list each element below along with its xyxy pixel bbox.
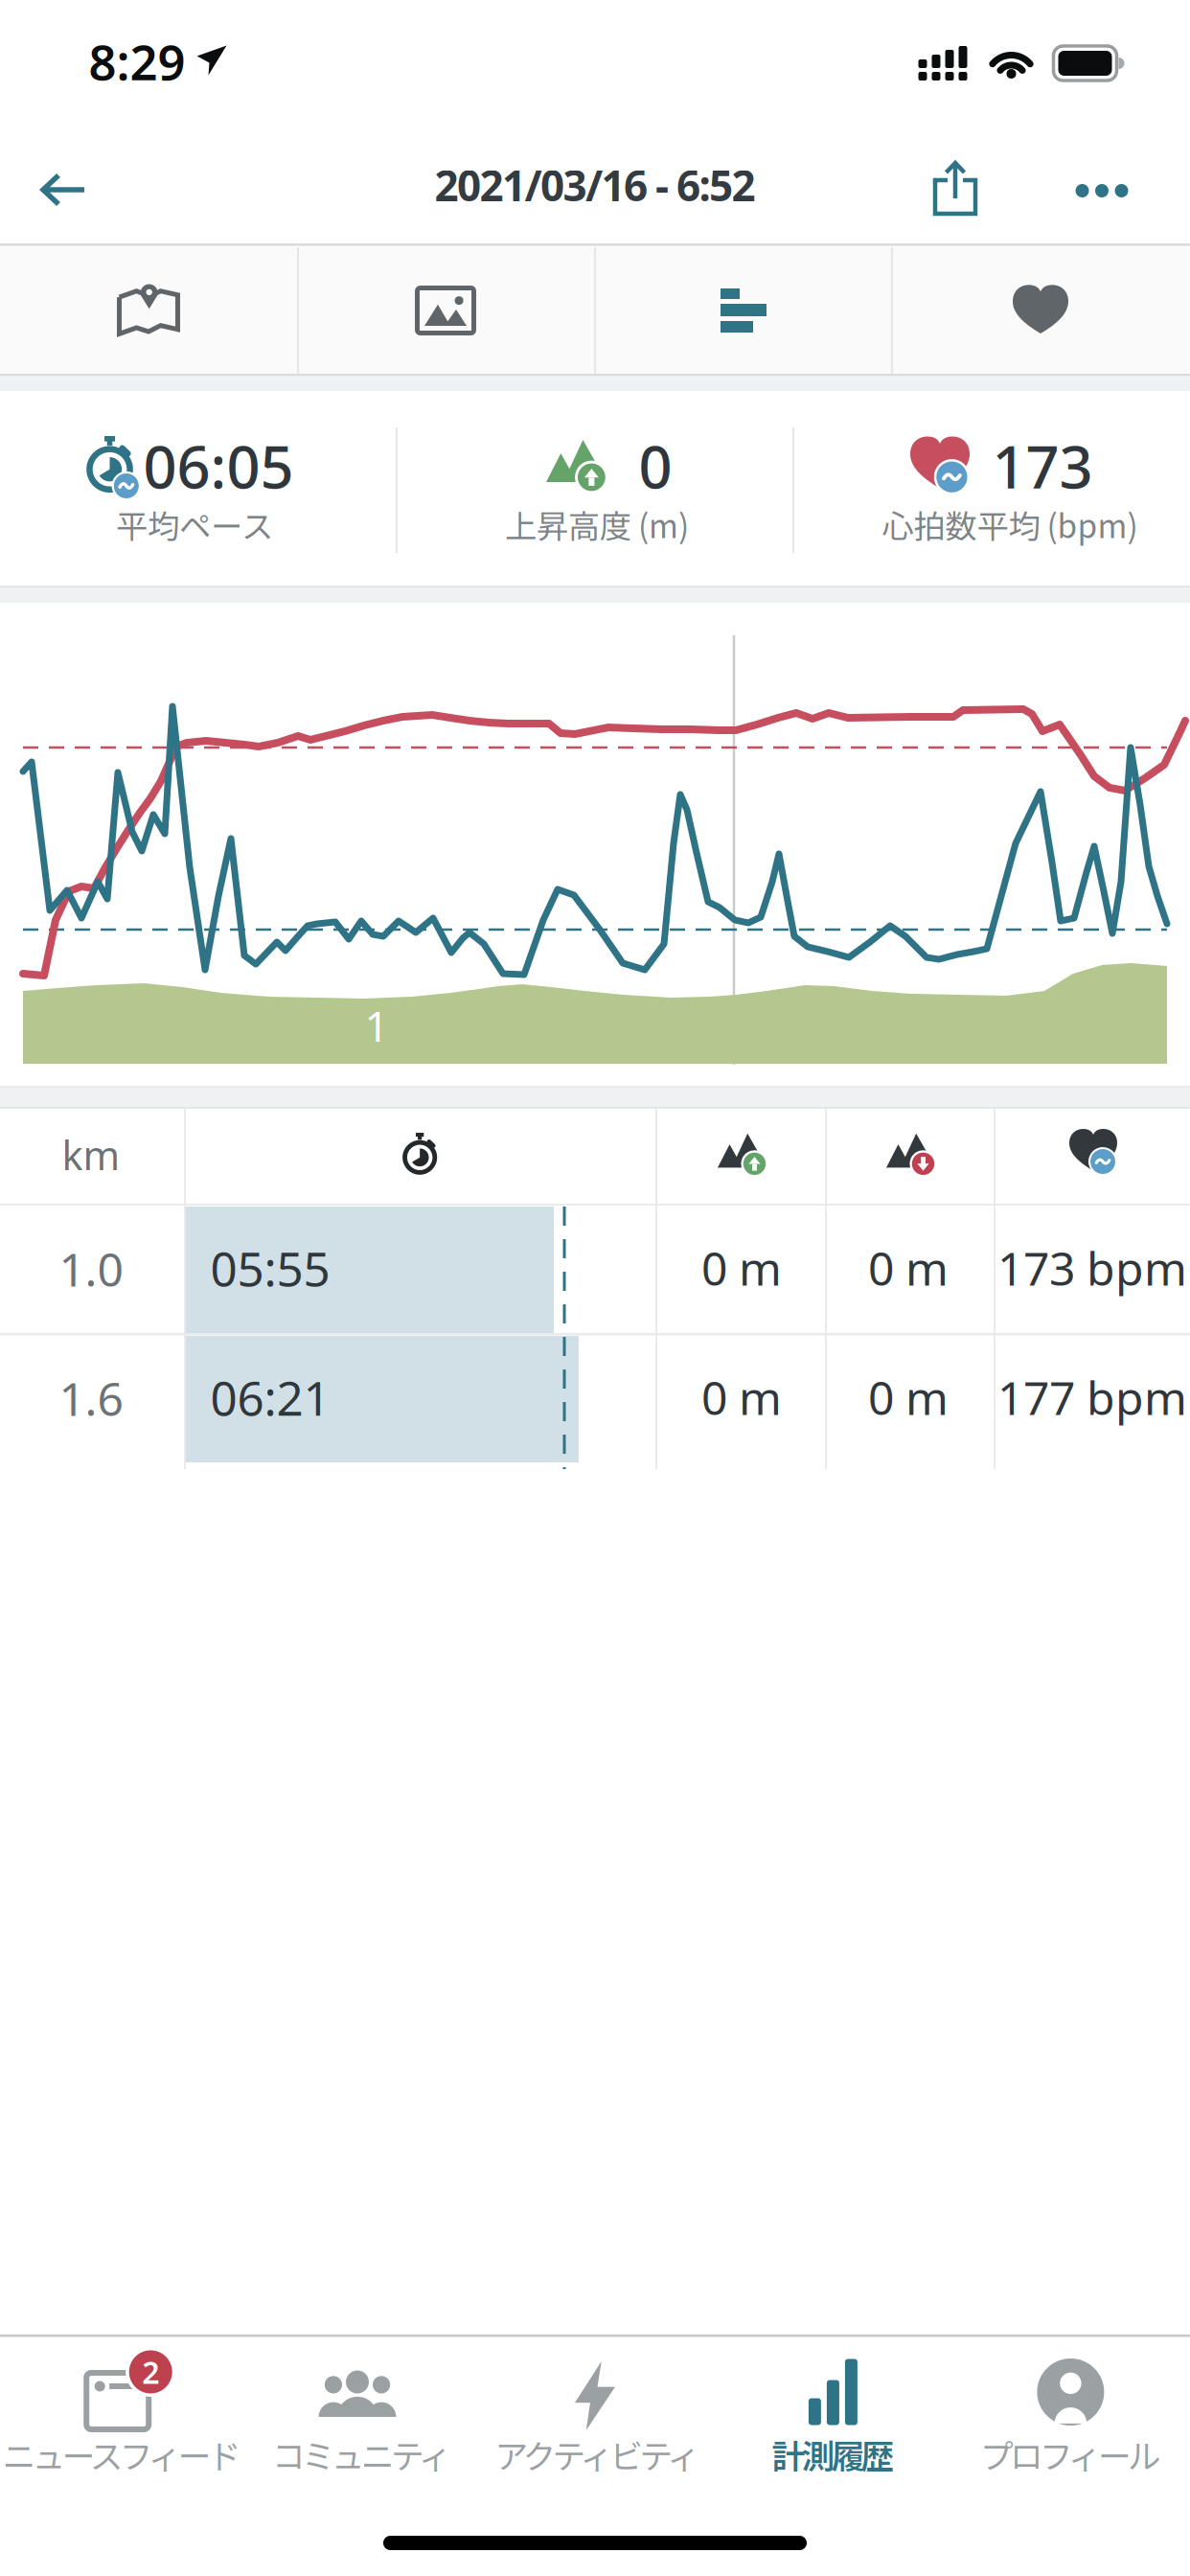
staticText: 0 m	[701, 1367, 782, 1428]
staticText: 0 m	[868, 1237, 949, 1298]
staticText: コミュニティ	[272, 2430, 452, 2478]
staticText: 173	[992, 427, 1093, 505]
staticText: アクティビティ	[495, 2430, 701, 2478]
button[interactable]: 2	[0, 2334, 238, 2495]
button[interactable]: 計測履歴	[714, 2334, 952, 2495]
staticText: 2	[142, 2352, 159, 2392]
button[interactable]: Share	[912, 148, 998, 228]
staticText: 8:29	[89, 29, 185, 94]
staticText: ニュースフィード	[3, 2430, 241, 2478]
button[interactable]: プロフィール	[952, 2334, 1190, 2495]
staticText: 2021/03/16 - 6:52	[435, 157, 755, 213]
button[interactable]: アクティビティ	[476, 2334, 714, 2495]
button[interactable]: Map	[1, 246, 296, 375]
staticText: km	[62, 1129, 120, 1181]
staticText: 心拍数平均 (bpm)	[882, 501, 1138, 547]
staticText: 平均ペース	[116, 501, 273, 547]
staticText: 173 bpm	[997, 1237, 1187, 1298]
button[interactable]: Photos	[298, 246, 593, 375]
staticText: 05:55	[210, 1236, 330, 1299]
staticText: 06:21	[210, 1366, 330, 1429]
button[interactable]: More	[1059, 162, 1145, 219]
staticText: 0 m	[868, 1367, 949, 1428]
staticText: 計測履歴	[772, 2430, 894, 2478]
staticText: 上昇高度 (m)	[505, 501, 689, 547]
staticText: 1	[365, 997, 389, 1053]
staticText: プロフィール	[980, 2430, 1161, 2478]
staticText: 0 m	[701, 1237, 782, 1298]
staticText: 0	[639, 427, 672, 505]
button[interactable]: Heart rate	[893, 246, 1188, 375]
staticText: 06:05	[143, 427, 294, 505]
button[interactable]: Back	[20, 151, 106, 228]
button[interactable]: コミュニティ	[238, 2334, 476, 2495]
staticText: 177 bpm	[997, 1367, 1187, 1428]
button[interactable]: Splits	[596, 246, 891, 375]
staticText: 1.6	[59, 1368, 123, 1429]
staticText: 1.0	[59, 1238, 123, 1299]
